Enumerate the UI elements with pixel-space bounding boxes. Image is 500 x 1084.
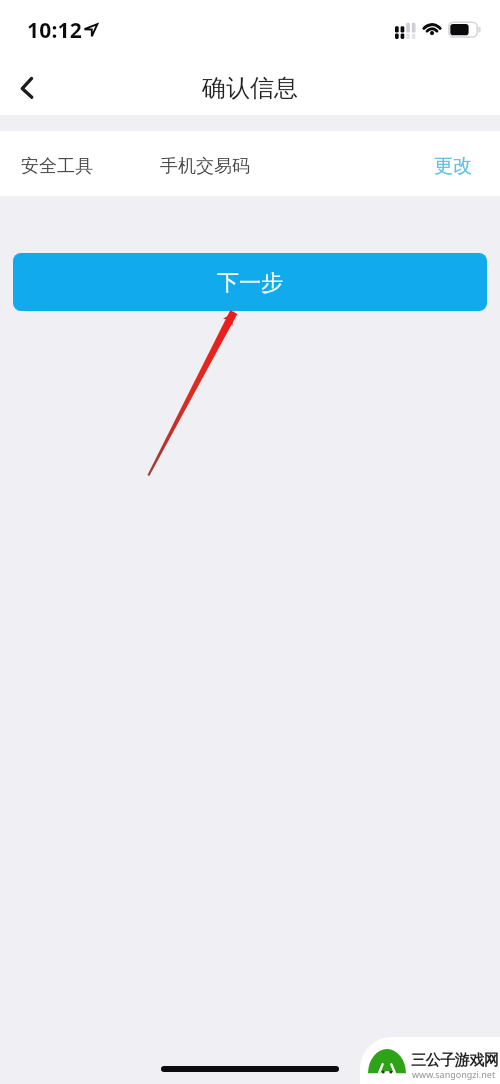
staticText: 手机交易码 [160, 155, 250, 178]
staticText: 下一步 [217, 269, 283, 297]
staticText: www.sangongzi.net [412, 1068, 496, 1080]
button[interactable]: 安全工具 [0, 131, 500, 196]
button[interactable]: 下一步 [13, 253, 487, 311]
staticText: 确认信息 [202, 73, 298, 103]
button[interactable]: 更改 [430, 141, 500, 189]
staticText: 更改 [434, 154, 472, 178]
staticText: 安全工具 [21, 155, 93, 178]
button[interactable]: Back [3, 65, 51, 111]
staticText: 三公子游戏网 [411, 1051, 499, 1070]
staticText: 10:12 [27, 16, 82, 45]
